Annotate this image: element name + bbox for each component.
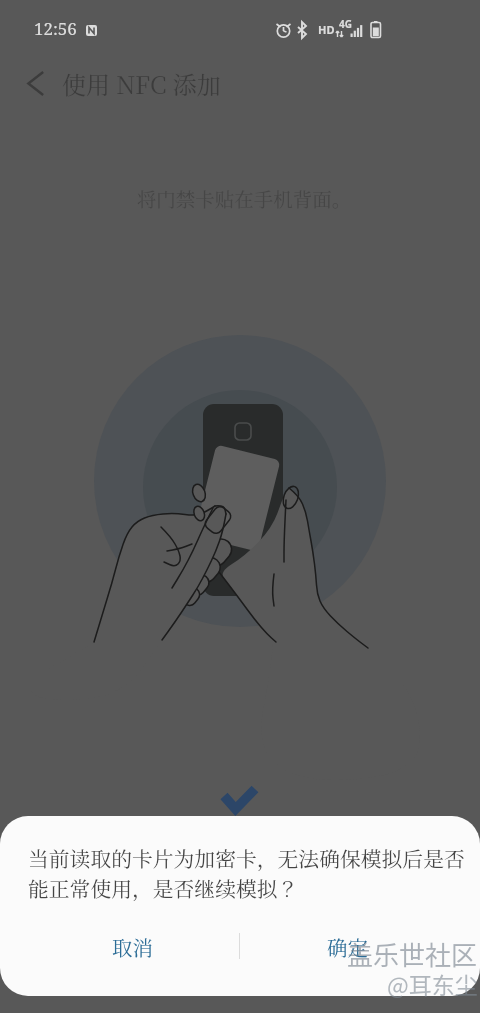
staticText: 盖乐世社区 — [347, 935, 478, 973]
staticText: 12:56 — [34, 17, 77, 40]
button[interactable]: 确定 — [240, 919, 454, 973]
button[interactable]: Back — [8, 59, 62, 107]
staticText: 当前读取的卡片为加密卡，无法确保模拟后是否能正常使用，是否继续模拟？ — [28, 843, 472, 903]
staticText: 将门禁卡贴在手机背面。 — [4, 185, 480, 213]
staticText: @耳东尘 — [387, 967, 478, 1000]
staticText: 4G — [339, 17, 352, 31]
staticText: 取消 — [112, 932, 153, 961]
staticText: HD — [318, 22, 335, 37]
staticText: 使用 NFC 添加 — [62, 66, 221, 100]
staticText: 确定 — [327, 932, 368, 961]
button[interactable]: 取消 — [26, 919, 239, 973]
